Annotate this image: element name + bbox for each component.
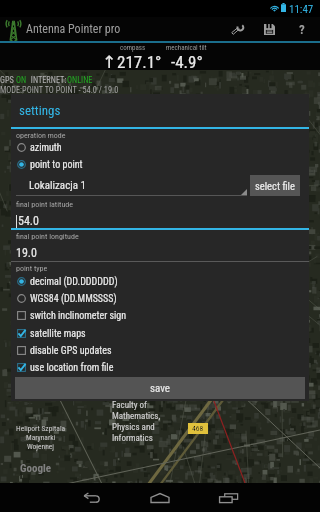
staticText: Faculty of: [112, 400, 147, 411]
staticText: ON: [16, 75, 27, 85]
button[interactable]: Settings: [221, 17, 253, 41]
staticText: Mathematics,: [112, 411, 161, 422]
staticText: Antenna Pointer pro: [26, 22, 121, 36]
button[interactable]: save: [15, 377, 305, 399]
button[interactable]: Back: [58, 483, 126, 512]
staticText: ONLINE: [67, 75, 93, 85]
button[interactable]: Save: [253, 17, 285, 41]
staticText: MODE:POINT TO POINT - 54.0 / 19.0: [0, 85, 119, 95]
staticText: Marynarki: [26, 433, 56, 442]
staticText: Lokalizacja 1: [29, 179, 86, 192]
staticText: 468: [192, 424, 204, 433]
staticText: final point longitude: [16, 232, 79, 241]
button[interactable]: satellite maps: [11, 325, 309, 342]
staticText: ?: [299, 22, 305, 37]
staticText: Wojennej: [27, 442, 55, 451]
button[interactable]: select file: [250, 175, 300, 196]
button[interactable]: point to point: [11, 156, 309, 173]
staticText: save: [150, 382, 170, 395]
button[interactable]: azimuth: [11, 139, 309, 156]
button[interactable]: Recents: [194, 483, 262, 512]
staticText: select file: [255, 180, 295, 192]
button[interactable]: Home: [126, 483, 194, 512]
staticText: point type: [16, 264, 48, 273]
staticText: Google: [20, 462, 51, 475]
staticText: ↑: [102, 52, 117, 72]
staticText: -4.9°: [171, 52, 203, 72]
button[interactable]: disable GPS updates: [11, 342, 309, 359]
staticText: azimuth: [30, 142, 62, 154]
staticText: satellite maps: [30, 328, 86, 340]
staticText: use location from file: [30, 362, 114, 374]
staticText: Physics and: [112, 422, 155, 433]
staticText: mechanical tilt: [166, 44, 207, 52]
button[interactable]: Help: [286, 17, 318, 41]
button[interactable]: decimal (DD.DDDDDD): [11, 273, 309, 290]
button[interactable]: Lokalizacja 1: [16, 174, 247, 196]
staticText: INTERNET:: [27, 75, 67, 85]
button[interactable]: use location from file: [11, 359, 309, 376]
staticText: Informatics: [112, 433, 153, 444]
staticText: decimal (DD.DDDDDD): [30, 276, 118, 288]
staticText: point to point: [30, 159, 83, 171]
staticText: 19.0: [16, 246, 37, 260]
staticText: settings: [19, 103, 61, 118]
staticText: 54.0: [18, 214, 39, 228]
staticText: 217.1°: [117, 52, 162, 72]
staticText: operation mode: [16, 131, 66, 140]
staticText: Heliport Szpitala: [16, 424, 66, 433]
button[interactable]: switch inclinometer sign: [11, 307, 309, 324]
staticText: 11:47: [289, 3, 314, 16]
staticText: switch inclinometer sign: [30, 310, 127, 322]
staticText: disable GPS updates: [30, 345, 112, 357]
staticText: WGS84 (DD.MMSSSS): [30, 293, 117, 305]
button[interactable]: WGS84 (DD.MMSSSS): [11, 290, 309, 307]
staticText: final point latitude: [16, 200, 73, 209]
staticText: GPS: [0, 75, 16, 85]
staticText: compass: [120, 44, 146, 52]
